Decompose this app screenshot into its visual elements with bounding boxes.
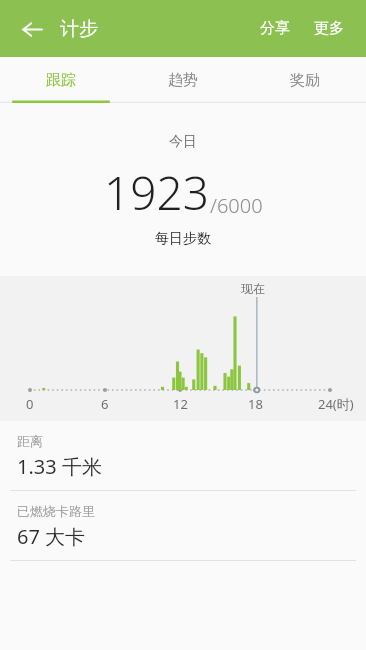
button[interactable]: 奖励 (244, 57, 366, 103)
staticText: 今日 (169, 133, 197, 151)
staticText: 0 (26, 395, 34, 413)
staticText: 距离 (17, 433, 43, 449)
staticText: 18 (248, 395, 263, 413)
staticText: 奖励 (290, 71, 320, 90)
staticText: 分享 (260, 19, 290, 38)
button[interactable]: 趋势 (122, 57, 244, 103)
button[interactable]: 分享 (250, 9, 300, 48)
staticText: 已燃烧卡路里 (17, 503, 95, 519)
button[interactable]: 距离 (0, 421, 366, 490)
staticText: /6000 (210, 192, 263, 219)
button[interactable]: 更多 (306, 9, 352, 48)
staticText: 1.33 千米 (17, 453, 102, 480)
staticText: 6 (101, 395, 109, 413)
staticText: 更多 (314, 19, 344, 38)
button[interactable]: 返回 (12, 9, 52, 49)
staticText: 跟踪 (46, 71, 76, 90)
staticText: 趋势 (168, 71, 198, 90)
staticText: 现在 (241, 281, 265, 296)
button[interactable]: 跟踪 (0, 57, 122, 103)
staticText: 67 大卡 (17, 523, 86, 550)
staticText: 1923 (104, 161, 210, 224)
staticText: 每日步数 (155, 230, 211, 248)
staticText: 计步 (60, 17, 98, 41)
staticText: 12 (173, 395, 188, 413)
button[interactable]: 已燃烧卡路里 (0, 491, 366, 560)
staticText: 24(时) (318, 395, 354, 413)
